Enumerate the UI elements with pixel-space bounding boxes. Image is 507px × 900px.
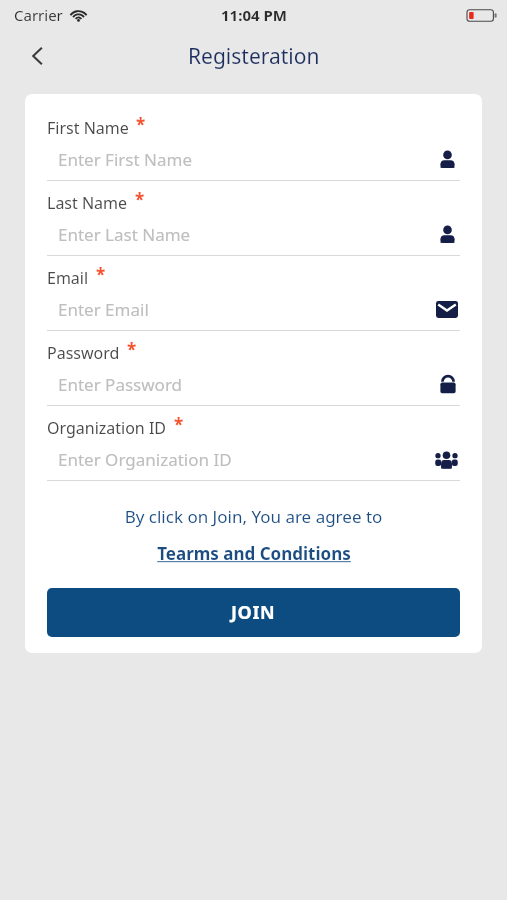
staticText: By click on Join, You are agree to: [47, 505, 460, 528]
staticText: *: [136, 113, 146, 136]
staticText: Tearms and Conditions: [157, 542, 351, 565]
staticText: Enter Organization ID: [58, 448, 435, 471]
staticText: *: [96, 263, 106, 286]
button[interactable]: First Name: [47, 116, 460, 191]
button[interactable]: Password: [47, 341, 460, 416]
button[interactable]: Back: [14, 32, 62, 80]
button[interactable]: Last Name: [47, 191, 460, 266]
button[interactable]: JOIN: [47, 588, 460, 637]
staticText: Enter Email: [58, 298, 436, 321]
staticText: *: [174, 413, 184, 436]
staticText: Registeration: [188, 42, 320, 71]
staticText: JOIN: [231, 600, 276, 625]
staticText: Carrier: [14, 5, 63, 25]
staticText: Enter First Name: [58, 148, 437, 171]
staticText: Enter Password: [58, 373, 438, 396]
button[interactable]: Email: [47, 266, 460, 341]
staticText: First Name: [47, 117, 129, 139]
staticText: Enter Last Name: [58, 223, 437, 246]
staticText: *: [127, 338, 137, 361]
staticText: *: [135, 188, 145, 211]
staticText: Last Name: [47, 192, 128, 214]
staticText: Email: [47, 267, 89, 289]
staticText: 11:04 PM: [221, 5, 287, 25]
staticText: Organization ID: [47, 417, 167, 439]
button[interactable]: Tearms and Conditions: [153, 541, 355, 566]
staticText: Password: [47, 342, 120, 364]
button[interactable]: Organization ID: [47, 416, 460, 491]
